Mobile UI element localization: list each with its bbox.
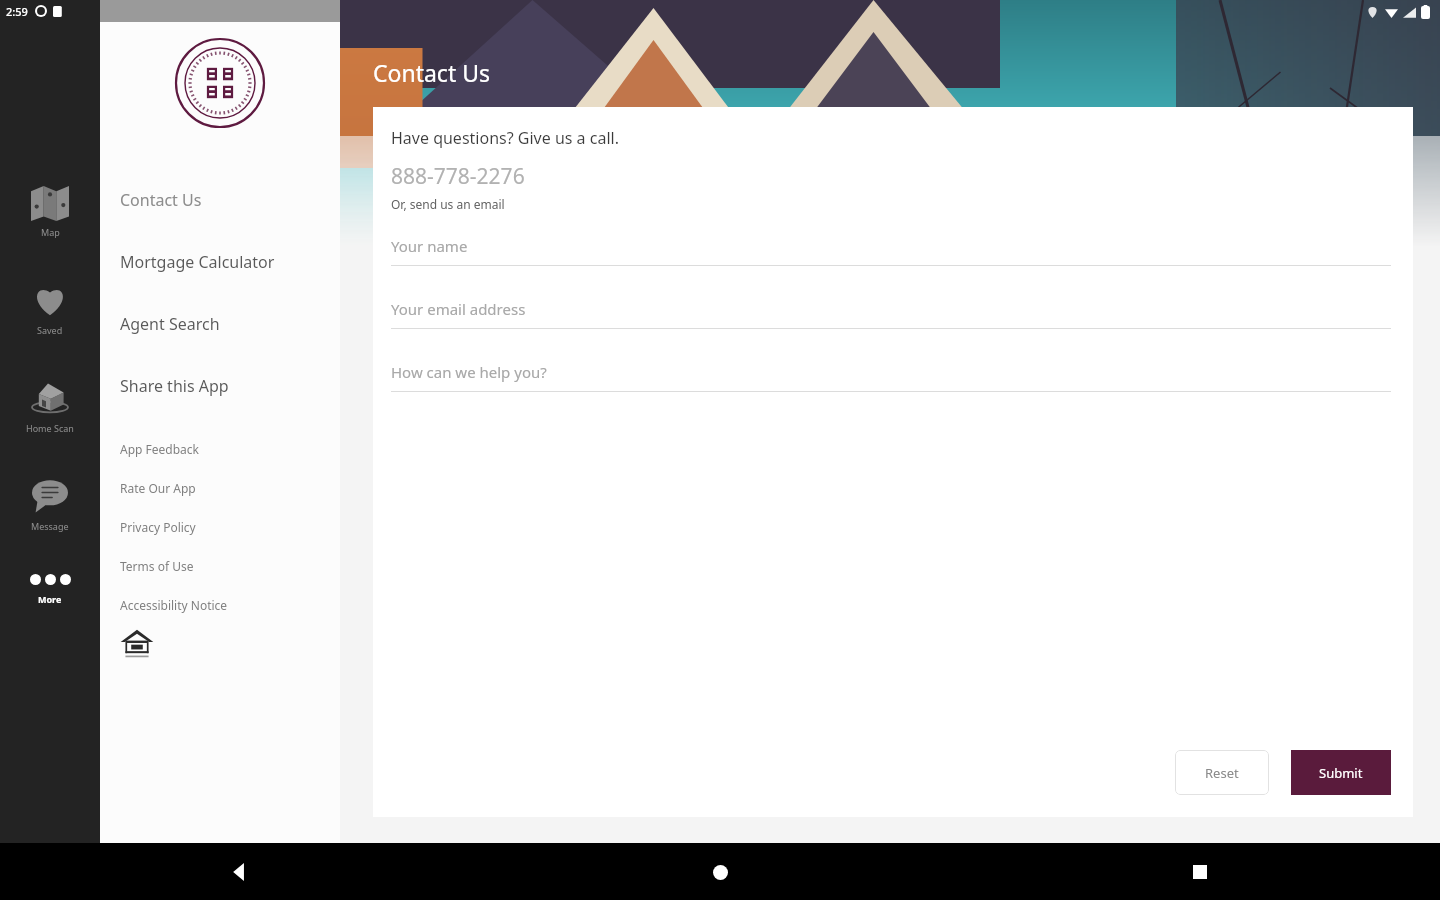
- button[interactable]: Saved: [0, 278, 100, 338]
- staticText: Message: [31, 520, 69, 532]
- staticText: Mortgage Calculator: [120, 251, 275, 273]
- button[interactable]: 888-778-2276: [391, 162, 525, 191]
- staticText: How can we help you?: [391, 362, 547, 382]
- staticText: App Feedback: [120, 441, 199, 457]
- staticText: More: [38, 593, 62, 605]
- staticText: 2:59: [6, 4, 28, 19]
- button[interactable]: More: [0, 570, 100, 609]
- button[interactable]: Map: [0, 180, 100, 240]
- button[interactable]: Home Scan: [0, 376, 100, 436]
- button[interactable]: Message: [0, 474, 100, 534]
- button[interactable]: Agent Search: [100, 311, 340, 337]
- button[interactable]: Recents: [1176, 848, 1224, 896]
- staticText: Reset: [1205, 764, 1239, 782]
- staticText: Terms of Use: [120, 558, 194, 574]
- staticText: Your name: [391, 236, 468, 256]
- staticText: Privacy Policy: [120, 519, 196, 535]
- button[interactable]: Home: [696, 848, 744, 896]
- staticText: Home Scan: [26, 422, 74, 434]
- button[interactable]: How can we help you?: [391, 362, 1391, 392]
- staticText: Rate Our App: [120, 480, 196, 496]
- staticText: Accessibility Notice: [120, 597, 228, 613]
- staticText: Saved: [37, 324, 63, 336]
- staticText: Submit: [1319, 764, 1363, 782]
- button[interactable]: Share this App: [100, 373, 340, 399]
- button[interactable]: Rate Our App: [100, 478, 340, 498]
- staticText: Your email address: [391, 299, 526, 319]
- button[interactable]: Reset: [1175, 750, 1269, 795]
- staticText: Map: [41, 226, 60, 238]
- staticText: Or, send us an email: [391, 196, 505, 212]
- button[interactable]: Privacy Policy: [100, 517, 340, 537]
- staticText: Contact Us: [373, 57, 491, 88]
- button[interactable]: Submit: [1291, 750, 1391, 795]
- staticText: 888-778-2276: [391, 162, 525, 191]
- staticText: Have questions? Give us a call.: [391, 127, 619, 149]
- button[interactable]: Your email address: [391, 299, 1391, 329]
- staticText: Contact Us: [120, 189, 202, 211]
- button[interactable]: Mortgage Calculator: [100, 249, 340, 275]
- button[interactable]: Contact Us: [100, 187, 340, 213]
- button[interactable]: Accessibility Notice: [100, 595, 340, 615]
- staticText: Share this App: [120, 375, 229, 397]
- button[interactable]: Back: [216, 848, 264, 896]
- button[interactable]: Your name: [391, 236, 1391, 266]
- button[interactable]: Terms of Use: [100, 556, 340, 576]
- staticText: Agent Search: [120, 313, 220, 335]
- button[interactable]: App Feedback: [100, 439, 340, 459]
